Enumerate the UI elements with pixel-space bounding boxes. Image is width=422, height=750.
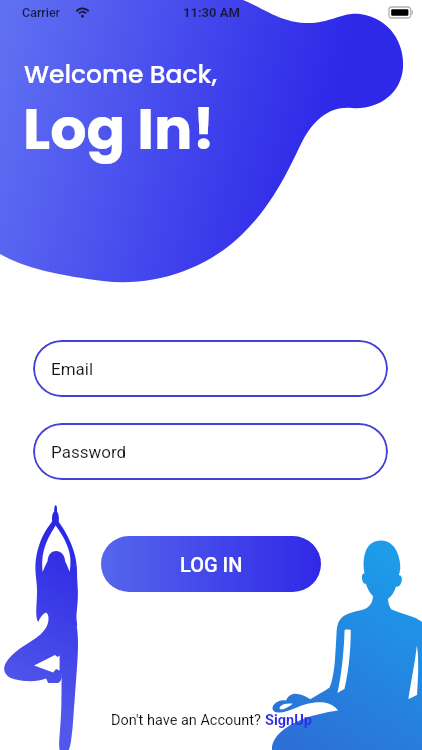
staticText: Carrier xyxy=(22,5,61,20)
staticText: LOG IN xyxy=(180,553,243,576)
staticText: Don't have an Account? xyxy=(111,712,265,729)
button[interactable]: Email xyxy=(33,340,388,397)
staticText: Log In! xyxy=(23,89,215,169)
staticText: 11:30 AM xyxy=(183,5,240,20)
staticText: Password xyxy=(51,442,127,462)
staticText: Email xyxy=(51,359,94,379)
staticText: Welcome Back, xyxy=(24,57,218,92)
staticText: SignUp xyxy=(265,712,312,729)
button[interactable]: Password xyxy=(33,423,388,480)
button[interactable]: LOG IN xyxy=(101,536,321,592)
button[interactable]: Don't have an Account? xyxy=(111,712,312,729)
